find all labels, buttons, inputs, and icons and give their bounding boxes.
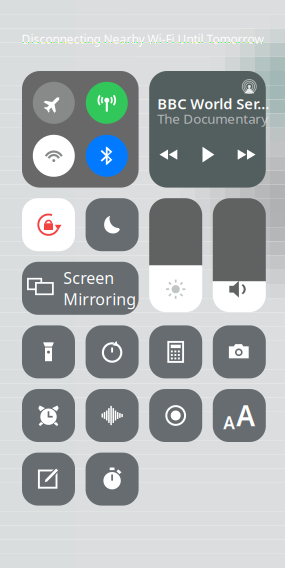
button[interactable]: Volume [213, 198, 266, 312]
button[interactable]: Flashlight [22, 325, 75, 378]
staticText: BBC World Ser... [157, 94, 269, 113]
staticText: A [236, 397, 255, 434]
button[interactable]: Notes [22, 453, 75, 506]
button[interactable]: Stopwatch [86, 453, 139, 506]
button[interactable]: Bluetooth [86, 135, 128, 177]
button[interactable]: Screen Recording [149, 389, 202, 442]
button[interactable]: Camera [213, 325, 266, 378]
button[interactable]: Rotation Lock [22, 198, 75, 251]
staticText: The Documentary [157, 110, 268, 127]
button[interactable]: Airplane Mode [33, 82, 75, 124]
button[interactable]: Do Not Disturb [86, 198, 139, 251]
button[interactable]: Timer [86, 325, 139, 378]
button[interactable]: Screen [22, 262, 139, 315]
button[interactable]: Sound Recognition [86, 389, 139, 442]
button[interactable]: BBC World Ser... [149, 71, 266, 188]
button[interactable]: Alarm [22, 389, 75, 442]
staticText: A [223, 411, 235, 434]
staticText: Mirroring [63, 288, 136, 309]
button[interactable]: Cellular Data [86, 82, 128, 124]
staticText: Disconnecting Nearby Wi-Fi Until Tomorro… [21, 31, 263, 47]
button[interactable]: Wi-Fi [33, 135, 75, 177]
button[interactable]: Text Size [213, 389, 266, 442]
button[interactable]: Brightness [149, 198, 202, 312]
staticText: Screen [63, 267, 114, 288]
button[interactable]: Calculator [149, 325, 202, 378]
